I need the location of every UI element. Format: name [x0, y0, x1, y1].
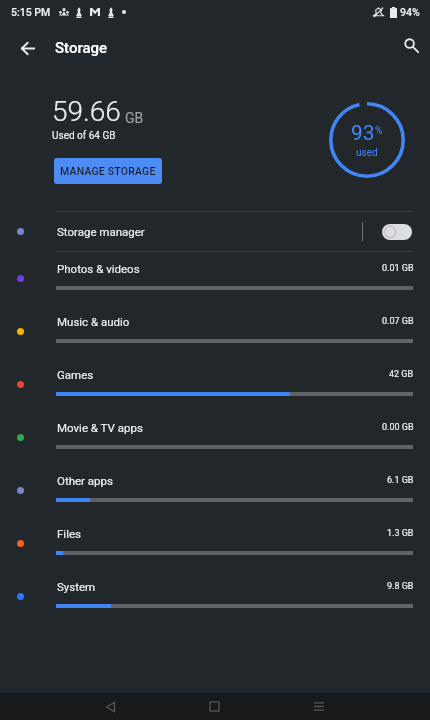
- staticText: 59.66: [52, 95, 121, 128]
- staticText: Other apps: [57, 474, 113, 487]
- staticText: 0.01 GB: [382, 263, 414, 274]
- staticText: 1.3 GB: [387, 528, 414, 539]
- staticText: Movie & TV apps: [57, 421, 143, 434]
- staticText: Storage manager: [57, 225, 145, 238]
- button[interactable]: Storage manager: [0, 212, 430, 251]
- staticText: 0.00 GB: [382, 422, 414, 433]
- staticText: 6.1 GB: [387, 475, 414, 486]
- staticText: 93: [351, 121, 375, 146]
- staticText: Storage: [55, 39, 108, 57]
- staticText: 9.8 GB: [387, 581, 414, 592]
- staticText: MANAGE STORAGE: [60, 165, 156, 177]
- staticText: Files: [57, 527, 81, 540]
- staticText: Used of 64 GB: [52, 130, 116, 142]
- button[interactable]: Recent apps: [276, 693, 361, 720]
- staticText: 42 GB: [389, 369, 414, 380]
- button[interactable]: Files: [0, 517, 430, 570]
- button[interactable]: Search: [391, 25, 430, 65]
- staticText: 5:15 PM: [11, 6, 51, 18]
- staticText: 94%: [400, 6, 420, 18]
- staticText: 0.07 GB: [382, 316, 414, 327]
- staticText: Music & audio: [57, 315, 130, 328]
- staticText: %: [375, 125, 383, 137]
- button[interactable]: System: [0, 570, 430, 623]
- button[interactable]: Movie & TV apps: [0, 411, 430, 464]
- staticText: GB: [125, 110, 144, 126]
- button[interactable]: Music & audio: [0, 305, 430, 358]
- button[interactable]: Games: [0, 358, 430, 411]
- button[interactable]: Back: [68, 693, 153, 720]
- staticText: Games: [57, 368, 94, 381]
- button[interactable]: Other apps: [0, 464, 430, 517]
- staticText: Photos & videos: [57, 262, 140, 275]
- button[interactable]: Home: [172, 693, 257, 720]
- staticText: used: [356, 147, 378, 159]
- button[interactable]: MANAGE STORAGE: [54, 158, 162, 184]
- button[interactable]: Storage manager toggle: [382, 224, 412, 240]
- staticText: System: [57, 580, 96, 593]
- button[interactable]: Back: [8, 28, 48, 68]
- button[interactable]: Photos & videos: [0, 252, 430, 305]
